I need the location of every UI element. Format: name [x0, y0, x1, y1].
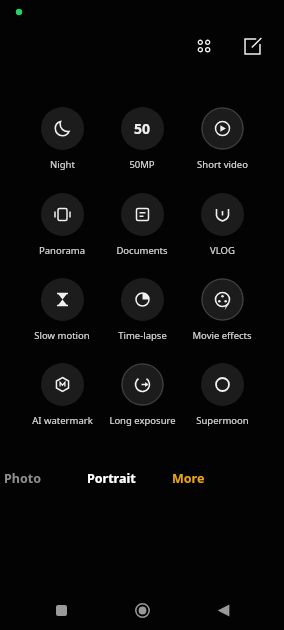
staticText: AI watermark [32, 414, 93, 427]
staticText: Time-lapse [118, 329, 167, 342]
staticText: Short video [197, 158, 248, 171]
button[interactable]: Night [20, 105, 104, 173]
button[interactable]: Documents [100, 191, 184, 259]
button[interactable]: Short video [180, 105, 264, 173]
button[interactable]: Edit [238, 32, 266, 60]
button[interactable]: More [172, 470, 205, 487]
staticText: Movie effects [192, 329, 252, 342]
button[interactable]: VLOG [180, 191, 264, 259]
button[interactable]: Home [122, 590, 162, 630]
staticText: More [172, 470, 205, 487]
staticText: 50MP [129, 158, 155, 171]
button[interactable]: Photo [4, 470, 41, 487]
button[interactable]: Long exposure [100, 361, 184, 429]
staticText: Panorama [39, 244, 85, 257]
button[interactable]: Panorama [20, 191, 104, 259]
button[interactable]: Recents [41, 590, 81, 630]
button[interactable]: Supermoon [180, 361, 264, 429]
staticText: Documents [116, 244, 168, 257]
button[interactable]: 50 [100, 105, 184, 173]
button[interactable]: Movie effects [180, 276, 264, 344]
staticText: Slow motion [34, 329, 90, 342]
button[interactable]: Time-lapse [100, 276, 184, 344]
button[interactable]: AI watermark [20, 361, 104, 429]
staticText: Night [50, 158, 75, 171]
staticText: 50 [134, 119, 151, 138]
button[interactable]: Slow motion [20, 276, 104, 344]
button[interactable]: Back [203, 590, 243, 630]
staticText: Photo [4, 470, 41, 487]
button[interactable]: Grid view [190, 32, 218, 60]
staticText: VLOG [210, 244, 235, 257]
button[interactable]: Portrait [87, 470, 136, 487]
staticText: Supermoon [196, 414, 249, 427]
staticText: Long exposure [109, 414, 176, 427]
staticText: Portrait [87, 470, 136, 487]
